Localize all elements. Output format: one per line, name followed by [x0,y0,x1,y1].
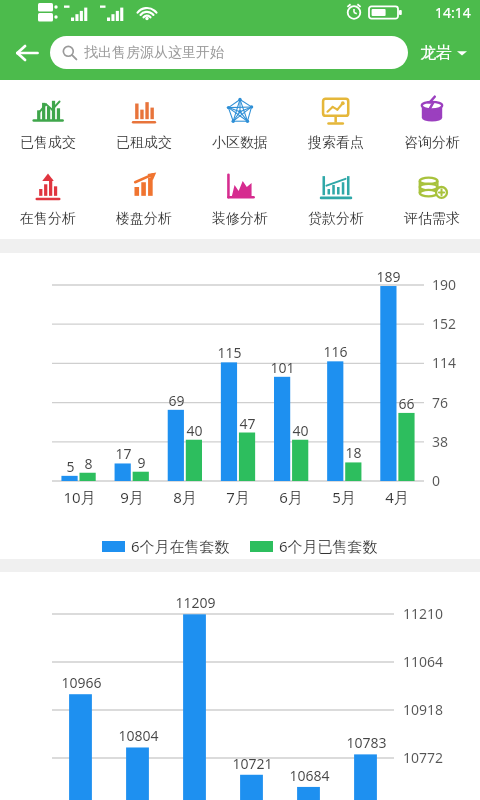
staticText: 装修分析 [212,210,268,228]
button[interactable]: 楼盘分析 [96,169,192,229]
staticText: 10月 [63,487,96,507]
staticText: 已售成交 [20,134,76,152]
staticText: 10783 [346,733,387,752]
staticText: 8月 [173,487,197,507]
staticText: 0 [432,471,441,490]
staticText: 17 [115,444,132,463]
staticText: 116 [323,342,348,361]
button[interactable]: 装修分析 [192,169,288,229]
staticText: 40 [292,421,309,440]
staticText: 搜索看点 [308,134,364,152]
button[interactable]: 龙岩 [417,37,470,69]
staticText: 10966 [61,673,102,692]
staticText: 10721 [232,754,273,773]
button[interactable]: 贷款分析 [288,169,384,229]
staticText: 6个月已售套数 [279,536,378,556]
staticText: 10684 [289,766,330,785]
button[interactable]: 已售成交 [0,93,96,153]
staticText: 8 [84,454,93,473]
staticText: 114 [432,353,457,372]
staticText: 评估需求 [404,210,460,228]
staticText: 101 [270,358,295,377]
staticText: 6个月在售套数 [131,536,230,556]
staticText: 在售分析 [20,210,76,228]
staticText: 10918 [403,700,444,719]
button[interactable]: 在售分析 [0,169,96,229]
button[interactable]: 已租成交 [96,93,192,153]
staticText: 76 [432,393,449,412]
staticText: 咨询分析 [404,134,460,152]
staticText: 11210 [403,604,444,623]
button[interactable]: Back [6,32,48,74]
staticText: 楼盘分析 [116,210,172,228]
staticText: 11209 [175,593,216,612]
staticText: 11064 [403,652,444,671]
button[interactable]: 6个月在售套数 [102,534,230,558]
staticText: 龙岩 [420,43,452,63]
staticText: 14:14 [435,3,471,22]
button[interactable]: 找出售房源从这里开始 [50,36,408,69]
staticText: 69 [168,391,185,410]
staticText: 10772 [403,748,444,767]
staticText: 7月 [226,487,250,507]
staticText: 5 [66,457,75,476]
staticText: 9 [137,453,146,472]
staticText: 18 [345,443,362,462]
staticText: 189 [376,267,401,286]
staticText: 9月 [120,487,144,507]
staticText: 10804 [118,726,159,745]
staticText: 小区数据 [212,134,268,152]
button[interactable]: 搜索看点 [288,93,384,153]
button[interactable]: 小区数据 [192,93,288,153]
staticText: 4月 [385,487,409,507]
staticText: 5月 [332,487,356,507]
staticText: 找出售房源从这里开始 [84,44,224,62]
button[interactable]: 评估需求 [384,169,480,229]
staticText: 47 [239,414,256,433]
staticText: 66 [398,394,415,413]
staticText: 40 [186,421,203,440]
staticText: 贷款分析 [308,210,364,228]
staticText: 6月 [279,487,303,507]
button[interactable]: 6个月已售套数 [250,534,378,558]
staticText: 152 [432,314,457,333]
staticText: 190 [432,275,457,294]
staticText: 115 [217,343,242,362]
staticText: 38 [432,432,449,451]
button[interactable]: 咨询分析 [384,93,480,153]
staticText: 已租成交 [116,134,172,152]
